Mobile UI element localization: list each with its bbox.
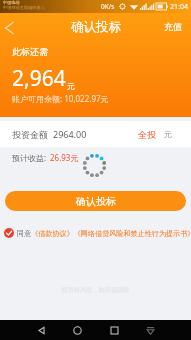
button[interactable]: Back — [0, 15, 24, 39]
staticText: 2,964 — [12, 64, 66, 93]
staticText: 中国移动互联网络接入 — [3, 5, 45, 10]
staticText: 2964.00 — [53, 128, 87, 140]
staticText: 账户可用余额: 10,022.97元 — [12, 93, 109, 104]
staticText: 确认投标 — [76, 195, 116, 208]
staticText: 0K/s — [101, 2, 115, 11]
staticText: 投资有风险，购买需谨慎 — [0, 286, 191, 294]
button[interactable]: Back — [31, 320, 51, 340]
staticText: 此标还需 — [12, 46, 48, 57]
button[interactable]: Recent apps — [104, 320, 124, 340]
button[interactable]: 同意《借款协议》《网络借贷风险和禁止性行为提示书》 — [4, 228, 191, 238]
button[interactable]: 充值 — [161, 18, 185, 35]
staticText: 元 — [164, 129, 172, 139]
staticText: 全投 — [138, 129, 156, 140]
staticText: 26.93元 — [50, 152, 79, 163]
button[interactable]: Home — [67, 320, 87, 340]
button[interactable]: 全投 — [136, 129, 158, 140]
staticText: 中国电信 — [3, 0, 20, 5]
staticText: 预计收益: — [12, 152, 47, 163]
button[interactable]: 确认投标 — [5, 191, 186, 211]
staticText: 充值 — [164, 21, 182, 32]
staticText: 元 — [67, 81, 75, 91]
staticText: 同意《借款协议》《网络借贷风险和禁止性行为提示书》 — [17, 229, 191, 238]
staticText: 投资金额 — [12, 129, 48, 140]
staticText: 21:04 — [170, 2, 188, 12]
button[interactable]: Hide keyboard — [140, 320, 160, 340]
staticText: 确认投标 — [71, 19, 121, 35]
